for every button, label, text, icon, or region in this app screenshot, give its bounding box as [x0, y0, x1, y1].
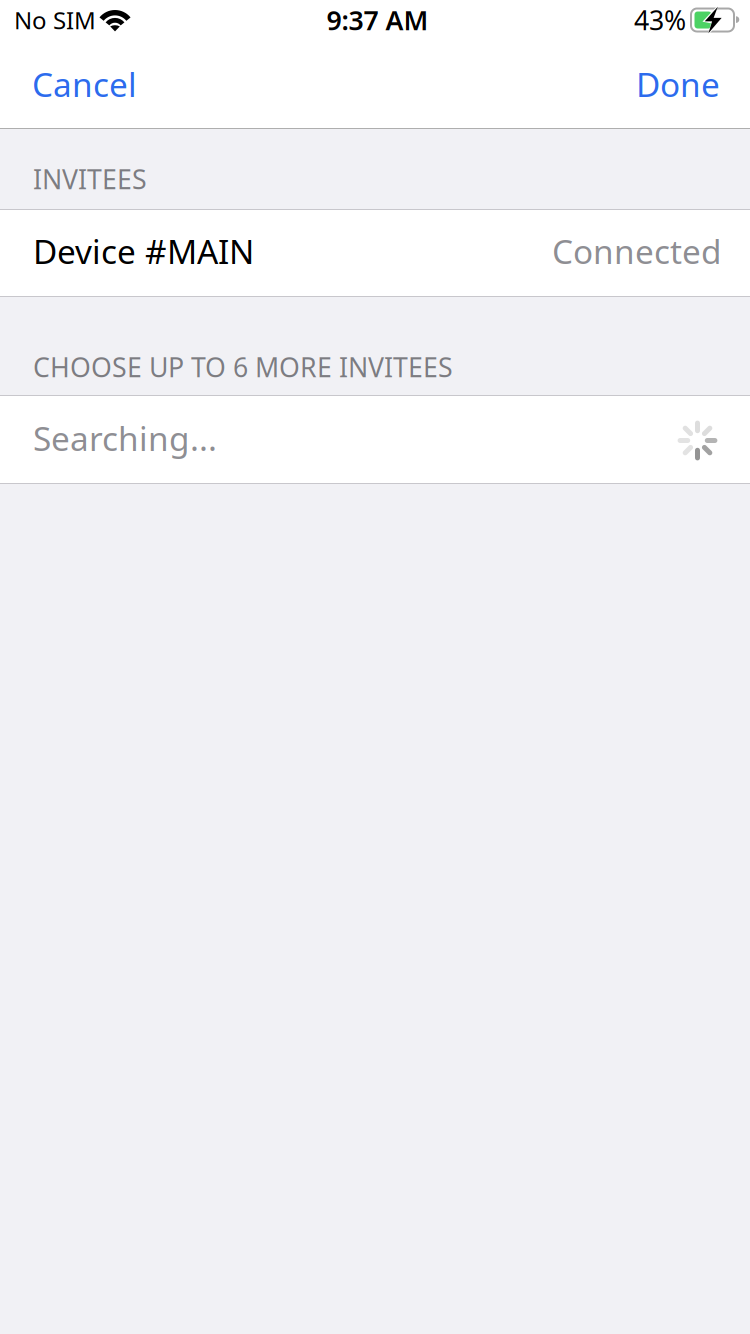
staticText: 43% [634, 2, 686, 38]
button[interactable]: Done [620, 40, 736, 128]
staticText: 9:37 AM [326, 2, 428, 38]
staticText: Searching... [33, 416, 217, 460]
button[interactable]: Device #MAIN [0, 210, 750, 296]
staticText: CHOOSE UP TO 6 MORE INVITEES [33, 349, 453, 385]
staticText: Cancel [32, 62, 137, 106]
staticText: Connected [552, 229, 722, 273]
staticText: INVITEES [33, 161, 147, 197]
staticText: Device #MAIN [33, 229, 254, 273]
staticText: No SIM [14, 4, 96, 36]
staticText: Done [636, 62, 720, 106]
button[interactable]: Cancel [16, 40, 153, 128]
